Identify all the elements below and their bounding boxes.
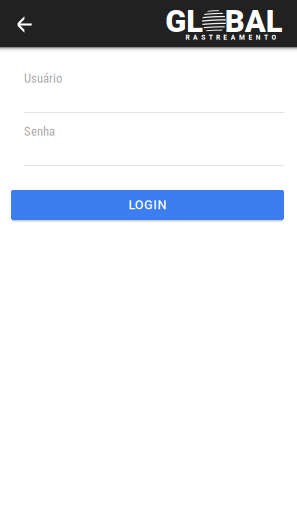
staticText: T <box>209 34 213 41</box>
staticText: BAL <box>225 3 283 40</box>
staticText: GL <box>165 3 203 40</box>
staticText: T <box>264 34 268 41</box>
staticText: A <box>193 34 198 41</box>
staticText: M <box>239 34 245 41</box>
staticText: A <box>231 34 236 41</box>
button[interactable]: Back <box>0 0 49 47</box>
staticText: R <box>186 34 190 41</box>
staticText: N <box>256 34 261 41</box>
staticText: LOGIN <box>128 198 166 212</box>
button[interactable]: LOGIN <box>11 190 284 223</box>
staticText: Senha <box>24 124 55 139</box>
staticText: Usuário <box>24 71 62 86</box>
staticText: E <box>248 34 252 41</box>
staticText: S <box>201 34 205 41</box>
staticText: E <box>223 34 227 41</box>
staticText: O <box>271 34 276 41</box>
staticText: R <box>216 34 220 41</box>
